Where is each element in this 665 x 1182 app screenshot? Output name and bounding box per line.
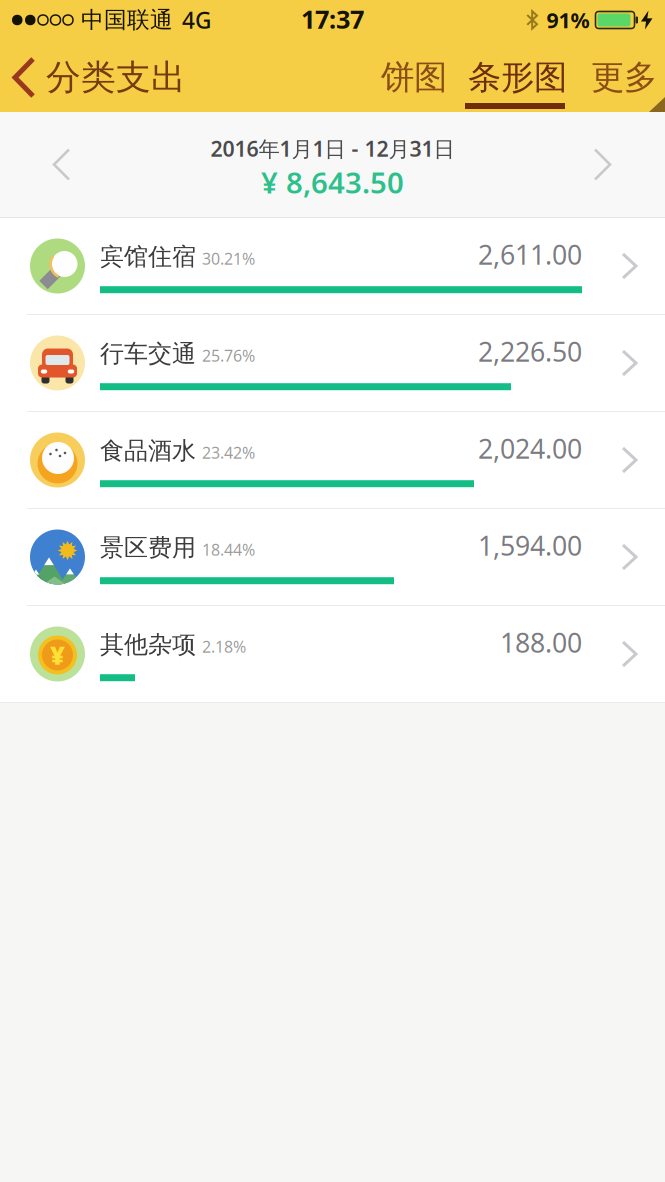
staticText: ¥	[50, 638, 65, 672]
button[interactable]: 食品酒水	[0, 412, 665, 508]
staticText: ¥ 8,643.50	[261, 163, 404, 202]
staticText: 4G	[182, 5, 211, 35]
staticText: 30.21%	[202, 248, 255, 269]
staticText: 2,226.50	[478, 334, 582, 369]
button[interactable]: 饼图	[381, 57, 447, 98]
button[interactable]	[0, 149, 69, 179]
button[interactable]: 宾馆住宿	[0, 218, 665, 314]
button[interactable]	[595, 149, 665, 179]
staticText: 91%	[546, 6, 589, 34]
staticText: 17:37	[301, 2, 364, 36]
button[interactable]: 分类支出	[0, 56, 186, 99]
button[interactable]: 景区费用	[0, 509, 665, 605]
button[interactable]: ¥	[0, 606, 665, 702]
button[interactable]: 行车交通	[0, 315, 665, 411]
staticText: 23.42%	[202, 442, 255, 463]
staticText: 行车交通	[100, 339, 196, 369]
staticText: 更多	[591, 57, 657, 98]
staticText: 其他杂项	[100, 630, 196, 660]
staticText: 2,024.00	[478, 431, 582, 466]
staticText: 食品酒水	[100, 436, 196, 466]
staticText: 2,611.00	[478, 237, 582, 272]
button[interactable]: 条形图	[468, 57, 567, 98]
button[interactable]: 更多	[591, 57, 657, 98]
staticText: 宾馆住宿	[100, 242, 196, 272]
staticText: 18.44%	[202, 539, 255, 560]
staticText: 饼图	[381, 57, 447, 98]
staticText: 中国联通	[81, 6, 173, 34]
staticText: 分类支出	[46, 56, 186, 99]
staticText: 条形图	[468, 57, 567, 98]
staticText: 景区费用	[100, 533, 196, 563]
staticText: 188.00	[500, 625, 582, 660]
staticText: 2.18%	[202, 636, 246, 657]
staticText: 1,594.00	[478, 528, 582, 563]
staticText: 25.76%	[202, 345, 255, 366]
staticText: 2016年1月1日 - 12月31日	[210, 134, 454, 163]
